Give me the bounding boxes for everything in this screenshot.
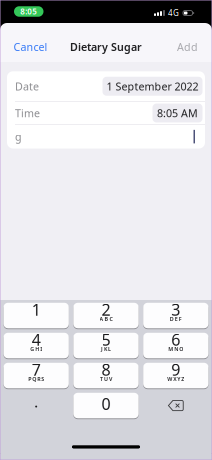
staticText: G H I: [30, 345, 42, 352]
staticText: Time: [15, 106, 40, 120]
staticText: D E F: [170, 315, 182, 322]
staticText: M N O: [168, 345, 183, 352]
button[interactable]: 9: [143, 363, 208, 388]
staticText: J K L: [101, 345, 111, 352]
staticText: W X Y Z: [167, 375, 184, 382]
staticText: 6: [171, 329, 180, 350]
staticText: 0: [101, 393, 110, 414]
staticText: 3: [171, 299, 180, 320]
button[interactable]: g: [7, 125, 205, 148]
staticText: g: [15, 130, 22, 144]
button[interactable]: Decimal point: [3, 393, 69, 418]
staticText: 8:05 AM: [157, 106, 198, 120]
button[interactable]: 2: [73, 303, 139, 328]
button[interactable]: 1: [3, 303, 69, 328]
staticText: Dietary Sugar: [70, 40, 142, 54]
staticText: 5: [101, 329, 110, 350]
button[interactable]: 7: [3, 363, 69, 388]
button[interactable]: 4: [3, 333, 69, 358]
staticText: Add: [177, 40, 198, 54]
staticText: 1: [32, 299, 41, 320]
staticText: 4: [32, 329, 41, 350]
staticText: P Q R S: [28, 375, 44, 382]
staticText: 9: [171, 359, 180, 380]
staticText: Date: [15, 79, 39, 93]
staticText: T U V: [100, 375, 112, 382]
staticText: Cancel: [13, 40, 47, 54]
button[interactable]: Date: [7, 71, 205, 101]
staticText: 1 September 2022: [106, 79, 198, 93]
button[interactable]: Cancel: [13, 40, 47, 54]
staticText: 4G: [168, 8, 179, 18]
staticText: 8: [101, 359, 110, 380]
staticText: A B C: [99, 315, 112, 322]
button[interactable]: 5: [73, 333, 139, 358]
button[interactable]: 6: [143, 333, 208, 358]
button[interactable]: Time: [7, 102, 205, 124]
staticText: 7: [32, 359, 41, 380]
button[interactable]: 3: [143, 303, 208, 328]
button[interactable]: 0: [73, 393, 139, 418]
button[interactable]: 8: [73, 363, 139, 388]
button[interactable]: Add: [177, 40, 198, 54]
staticText: 8:05: [20, 6, 37, 17]
button[interactable]: Delete: [143, 393, 208, 418]
staticText: 2: [101, 299, 110, 320]
